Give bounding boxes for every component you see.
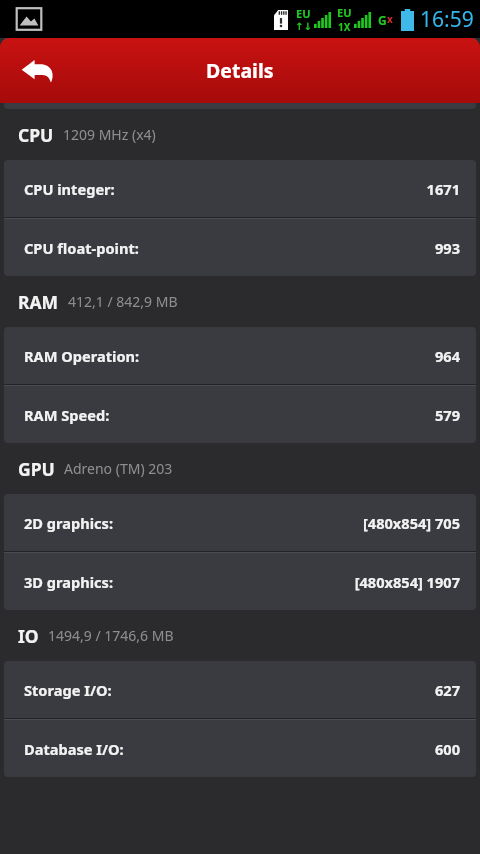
staticText: RAM <box>18 290 59 314</box>
staticText: CPU float-point: <box>24 238 139 258</box>
button[interactable]: CPU integer: <box>4 160 476 217</box>
staticText: CPU integer: <box>24 179 115 199</box>
staticText: GPU <box>18 457 55 481</box>
staticText: 412,1 / 842,9 MB <box>68 292 178 311</box>
staticText: 627 <box>434 680 460 700</box>
staticText: ↑↓ <box>295 21 312 33</box>
staticText: 2D graphics: <box>24 513 114 533</box>
staticText: 1494,9 / 1746,6 MB <box>48 626 174 645</box>
staticText: 964 <box>434 346 460 366</box>
staticText: G <box>378 12 387 28</box>
staticText: IO <box>18 624 39 648</box>
staticText: 600 <box>434 739 460 759</box>
staticText: [480x854] 1907 <box>354 572 460 592</box>
button[interactable]: Multitask: <box>4 38 476 52</box>
button[interactable]: Back <box>10 43 66 99</box>
staticText: EU <box>296 6 311 21</box>
staticText: Database I/O: <box>24 739 124 759</box>
button[interactable]: 2D graphics: <box>4 494 476 551</box>
button[interactable]: RAM Speed: <box>4 386 476 443</box>
button[interactable]: Database I/O: <box>4 720 476 777</box>
staticText: Adreno (TM) 203 <box>64 459 173 478</box>
button[interactable]: Dalvik: <box>4 54 476 66</box>
staticText: RAM Speed: <box>24 405 110 425</box>
staticText: 579 <box>434 405 460 425</box>
staticText: 993 <box>434 238 460 258</box>
button[interactable]: RAM Operation: <box>4 327 476 384</box>
staticText: EU <box>337 5 352 20</box>
staticText: [480x854] 705 <box>362 513 460 533</box>
staticText: 3D graphics: <box>24 572 114 592</box>
staticText: 1671 <box>426 179 460 199</box>
staticText: x <box>387 12 393 26</box>
staticText: 1209 MHz (x4) <box>63 125 156 144</box>
staticText: CPU <box>18 123 54 147</box>
staticText: 1X <box>338 20 351 34</box>
button[interactable]: CPU float-point: <box>4 219 476 276</box>
button[interactable]: 3D graphics: <box>4 553 476 610</box>
staticText: Dalvik: <box>24 54 74 66</box>
button[interactable]: Storage I/O: <box>4 661 476 718</box>
staticText: Details <box>206 57 274 84</box>
staticText: Storage I/O: <box>24 680 112 700</box>
staticText: RAM Operation: <box>24 346 140 366</box>
staticText: 16:59 <box>420 5 474 34</box>
